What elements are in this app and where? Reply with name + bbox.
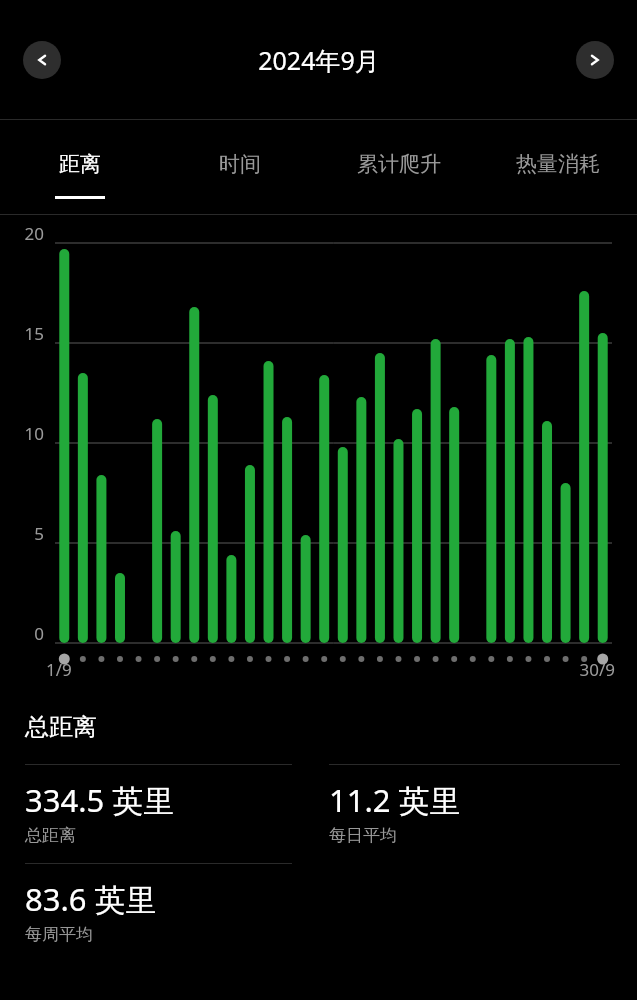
staticText: 20 bbox=[0, 222, 44, 245]
staticText: 1/9 bbox=[46, 658, 72, 681]
button[interactable]: 距离 bbox=[0, 120, 160, 215]
staticText: 每周平均 bbox=[25, 924, 93, 945]
staticText: 时间 bbox=[219, 151, 261, 177]
staticText: 0 bbox=[0, 622, 44, 645]
staticText: 2024年9月 bbox=[258, 43, 380, 77]
button[interactable]: 热量消耗 bbox=[478, 120, 637, 215]
staticText: 10 bbox=[0, 422, 44, 445]
staticText: 距离 bbox=[59, 151, 101, 177]
button[interactable]: 累计爬升 bbox=[319, 120, 478, 215]
staticText: 总距离 bbox=[25, 712, 97, 742]
button[interactable]: Next month bbox=[576, 41, 614, 79]
staticText: 334.5 英里 bbox=[25, 779, 175, 821]
staticText: 每日平均 bbox=[329, 825, 397, 846]
button[interactable]: 11.2 英里 bbox=[329, 764, 620, 863]
staticText: 11.2 英里 bbox=[329, 779, 461, 821]
button[interactable]: Previous month bbox=[23, 41, 61, 79]
staticText: 热量消耗 bbox=[516, 151, 600, 177]
staticText: 83.6 英里 bbox=[25, 878, 157, 920]
button[interactable]: 83.6 英里 bbox=[25, 863, 292, 962]
staticText: 5 bbox=[0, 522, 44, 545]
staticText: 15 bbox=[0, 322, 44, 345]
staticText: 总距离 bbox=[25, 825, 76, 846]
button[interactable]: 334.5 英里 bbox=[25, 764, 292, 863]
staticText: 30/9 bbox=[0, 658, 615, 681]
staticText: 累计爬升 bbox=[357, 151, 441, 177]
button[interactable]: 时间 bbox=[160, 120, 319, 215]
